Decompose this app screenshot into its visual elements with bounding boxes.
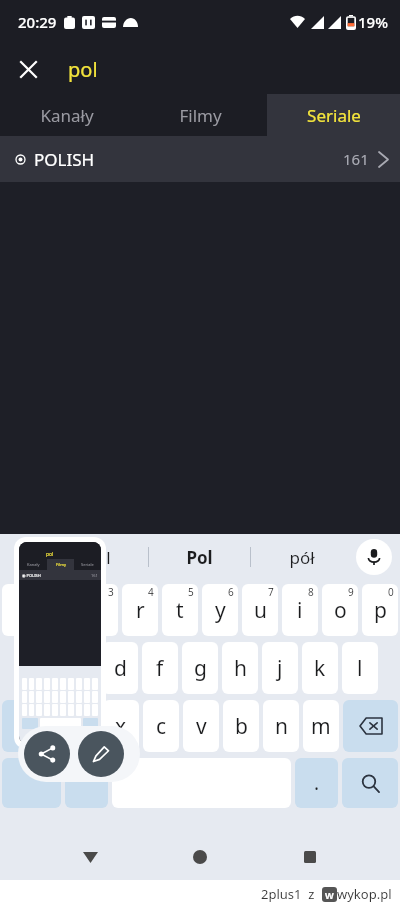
button[interactable]: Shift	[2, 700, 58, 752]
button[interactable]: Close	[10, 51, 46, 87]
staticText: Filmy	[56, 562, 66, 567]
staticText: m	[311, 712, 331, 741]
button[interactable]: Recents	[290, 837, 330, 877]
staticText: Kanały	[27, 562, 40, 567]
button[interactable]: t	[162, 584, 198, 636]
button[interactable]: x	[103, 700, 139, 752]
staticText: z	[76, 712, 86, 741]
button[interactable]: Backspace	[343, 700, 398, 752]
staticText: 0	[388, 585, 394, 599]
button[interactable]: Back	[70, 837, 110, 877]
button[interactable]: p	[362, 584, 398, 636]
button[interactable]: pół	[251, 534, 352, 580]
button[interactable]: o	[322, 584, 358, 636]
button[interactable]: Search	[342, 758, 398, 808]
staticText: 161	[343, 149, 369, 169]
staticText: 9	[348, 585, 354, 599]
staticText: Seriale	[81, 562, 94, 567]
staticText: d	[114, 654, 127, 683]
button[interactable]: j	[262, 642, 298, 694]
staticText: pol	[68, 56, 98, 83]
button[interactable]: Voice input	[356, 539, 392, 575]
button[interactable]: c	[143, 700, 179, 752]
staticText: 4	[148, 585, 154, 599]
staticText: Seriale	[307, 104, 361, 127]
staticText: c	[156, 712, 167, 741]
button[interactable]: v	[183, 700, 219, 752]
staticText: g	[194, 654, 207, 683]
staticText: y	[215, 596, 226, 625]
staticText: r	[136, 596, 145, 625]
button[interactable]: a	[22, 642, 58, 694]
button[interactable]: Space	[112, 758, 291, 808]
staticText: f	[156, 654, 164, 683]
staticText: o	[334, 596, 347, 625]
button[interactable]: h	[222, 642, 258, 694]
staticText: t	[176, 596, 184, 625]
staticText: u	[254, 596, 267, 625]
staticText: Kanały	[40, 104, 94, 127]
staticText: pół	[289, 546, 315, 569]
button[interactable]: d	[102, 642, 138, 694]
staticText: POLISH	[34, 148, 95, 171]
staticText: n	[275, 712, 288, 741]
staticText: .	[314, 770, 320, 796]
button[interactable]: i	[282, 584, 318, 636]
button[interactable]: g	[182, 642, 218, 694]
button[interactable]: z	[62, 700, 99, 752]
button[interactable]: q	[2, 584, 38, 636]
button[interactable]: f	[142, 642, 178, 694]
staticText: 19%	[358, 12, 388, 32]
button[interactable]: Home	[180, 837, 220, 877]
staticText: 3	[108, 585, 114, 599]
button[interactable]: Screenshot preview	[14, 537, 106, 749]
button[interactable]: u	[242, 584, 278, 636]
button[interactable]: Pol	[149, 534, 250, 580]
staticText: h	[234, 654, 247, 683]
button[interactable]: e	[82, 584, 118, 636]
button[interactable]: n	[263, 700, 299, 752]
staticText: wykop.pl	[337, 885, 392, 903]
button[interactable]: Filmy	[134, 94, 267, 136]
button[interactable]: Seriale	[267, 94, 400, 136]
button[interactable]: Edit	[78, 731, 124, 777]
button[interactable]: k	[302, 642, 338, 694]
staticText: v	[196, 712, 207, 741]
staticText: q	[14, 596, 27, 625]
staticText: 7	[268, 585, 274, 599]
staticText: j	[277, 654, 283, 683]
staticText: pol	[46, 551, 54, 558]
button[interactable]: Share	[24, 731, 70, 777]
staticText: b	[235, 712, 248, 741]
staticText: 20:29	[18, 12, 57, 32]
staticText: 2plus1 z	[261, 885, 322, 903]
button[interactable]: pol	[48, 534, 148, 580]
button[interactable]: y	[202, 584, 238, 636]
button[interactable]: s	[62, 642, 98, 694]
button[interactable]: .	[295, 758, 338, 808]
button[interactable]: Numbers	[2, 758, 61, 808]
staticText: a	[34, 654, 46, 683]
button[interactable]: b	[223, 700, 259, 752]
staticText: Pol	[186, 546, 213, 569]
button[interactable]: Emoji	[65, 758, 108, 808]
staticText: 6	[228, 585, 234, 599]
button[interactable]: Kanały	[0, 94, 134, 136]
staticText: l	[357, 654, 363, 683]
staticText: Filmy	[179, 104, 222, 127]
button[interactable]: l	[342, 642, 378, 694]
button[interactable]: r	[122, 584, 158, 636]
button[interactable]: POLISH	[0, 136, 400, 182]
staticText: W	[325, 889, 334, 901]
staticText: p	[374, 596, 387, 625]
staticText: ◉ POLISH	[22, 573, 41, 578]
button[interactable]: m	[303, 700, 339, 752]
staticText: s	[75, 654, 86, 683]
button[interactable]: Apps	[10, 540, 44, 574]
staticText: e	[94, 596, 106, 625]
staticText: 5	[188, 585, 194, 599]
